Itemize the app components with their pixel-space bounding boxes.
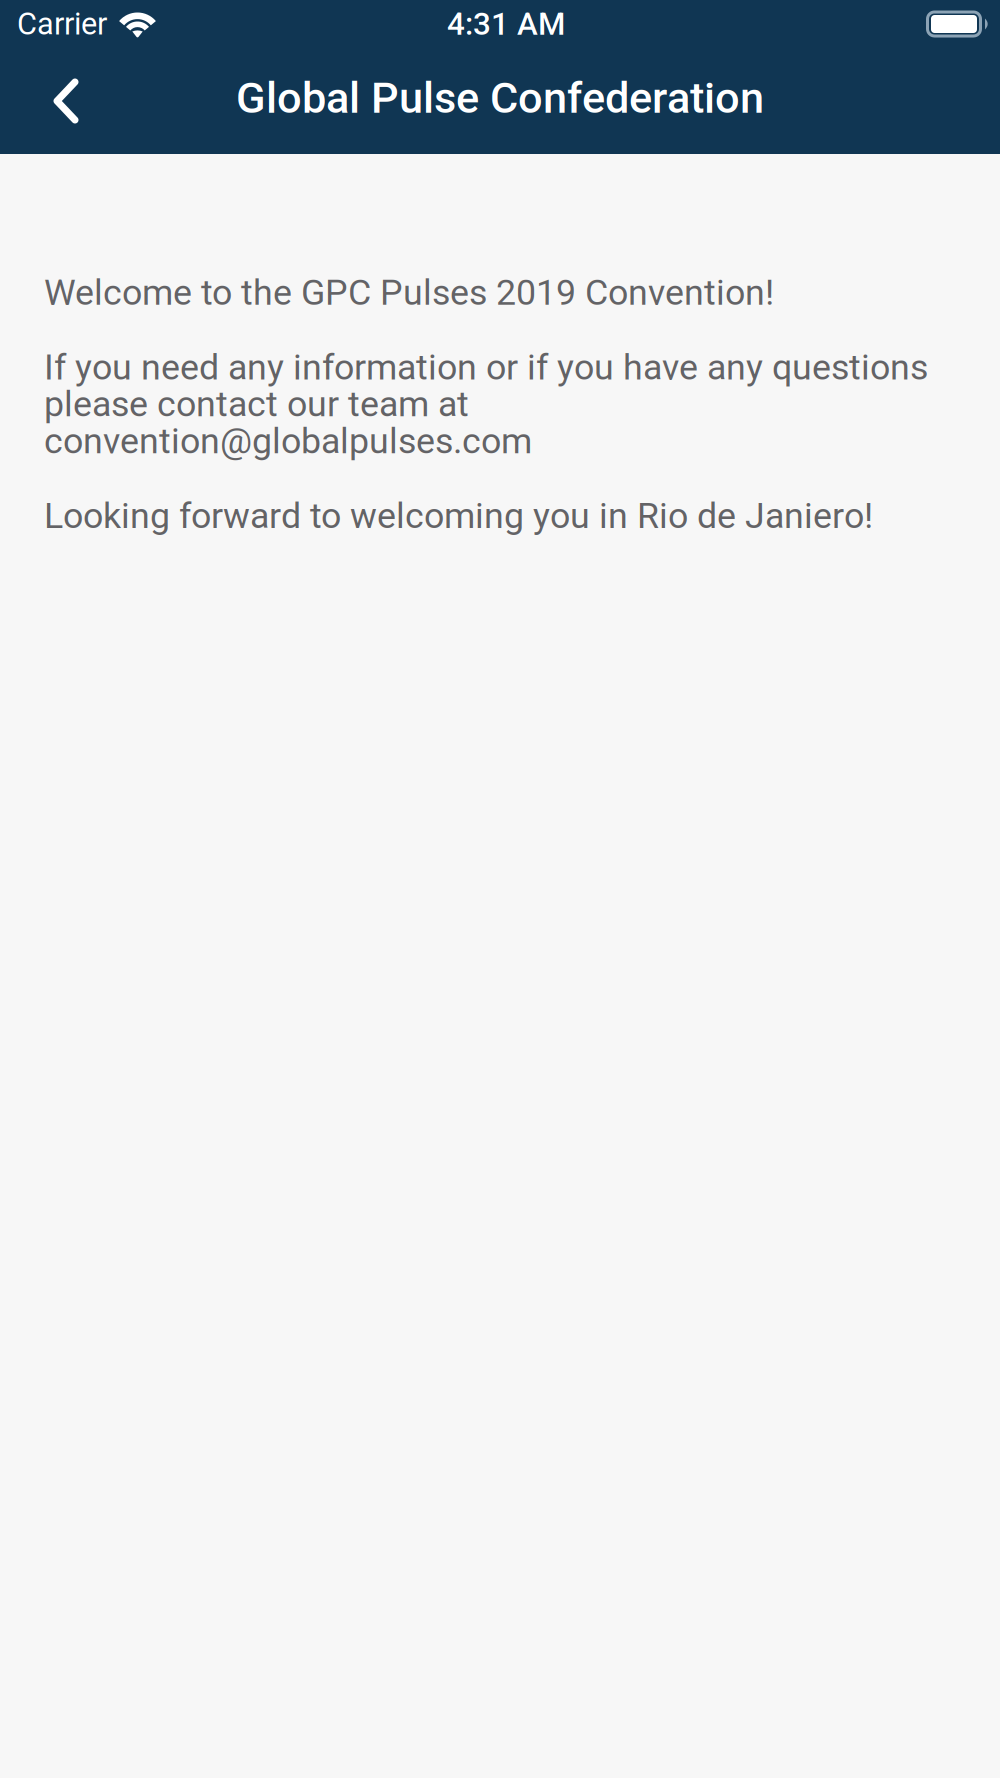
- staticText: Looking forward to welcoming you in Rio …: [44, 497, 873, 534]
- staticText: Welcome to the GPC Pulses 2019 Conventio…: [44, 274, 774, 311]
- staticText: Carrier: [17, 6, 107, 42]
- staticText: 4:31 AM: [447, 6, 565, 42]
- button[interactable]: Back: [0, 48, 132, 154]
- staticText: If you need any information or if you ha…: [44, 349, 928, 459]
- staticText: Global Pulse Confederation: [236, 73, 764, 123]
